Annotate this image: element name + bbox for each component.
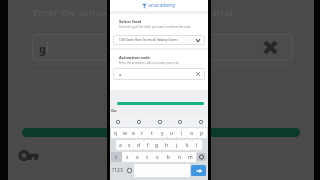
button[interactable]: ?123 (111, 164, 124, 177)
staticText: Activate your subscription using the cod… (33, 19, 160, 25)
button[interactable]: y (157, 128, 167, 138)
staticText: g (39, 41, 46, 56)
button[interactable]: c (142, 152, 152, 162)
button[interactable]: z (122, 152, 132, 162)
button[interactable]: b (163, 152, 174, 162)
button[interactable]: g (152, 140, 162, 150)
staticText: y (161, 130, 164, 137)
button[interactable]: f (143, 140, 152, 150)
button[interactable]: a (116, 140, 125, 150)
button[interactable]: Clear code (196, 72, 200, 76)
other: Activation key (18, 146, 39, 160)
staticText: ?123 (112, 167, 123, 174)
button[interactable] (117, 102, 204, 105)
staticText: f (147, 142, 149, 149)
staticText: a (119, 142, 122, 149)
staticText: x (136, 154, 139, 161)
staticText: 10th Exam (Non Technical) Railway Exams (119, 38, 178, 42)
button[interactable]: Backspace (197, 153, 206, 161)
button[interactable]: Keyboard tool 5 (197, 118, 204, 125)
staticText: Enter the activation code to activate yo… (119, 61, 179, 65)
button[interactable]: x (132, 152, 142, 162)
button[interactable]: j (172, 140, 182, 150)
staticText: Activation code (119, 55, 150, 60)
staticText: Enter the activation code to start your … (33, 6, 233, 19)
staticText: g (155, 142, 159, 149)
staticText: r (141, 130, 144, 137)
staticText: j (176, 142, 178, 149)
staticText: v (156, 154, 159, 161)
button[interactable]: a (113, 68, 205, 80)
staticText: w (123, 130, 127, 137)
staticText: h (165, 142, 169, 149)
staticText: c (146, 154, 149, 161)
button[interactable]: h (162, 140, 172, 150)
button[interactable]: q (111, 128, 120, 138)
staticText: i (181, 130, 183, 137)
button[interactable]: v (152, 152, 163, 162)
button[interactable]: d (134, 140, 143, 150)
button[interactable]: Emoji (124, 164, 134, 177)
button[interactable]: e (129, 128, 138, 138)
staticText: Select Goal (119, 19, 141, 24)
button[interactable]: k (182, 140, 192, 150)
staticText: m (188, 154, 193, 161)
button[interactable]: s (125, 140, 134, 150)
button[interactable]: unacademy (110, 0, 208, 11)
button[interactable]: ⇧ (111, 152, 122, 162)
staticText: s (128, 142, 131, 149)
button[interactable]: Keyboard tool 1 (114, 118, 121, 125)
staticText: Select the goal for which you want to re… (119, 25, 191, 29)
staticText: o (190, 130, 194, 137)
button[interactable]: Keyboard tool 4 (176, 118, 183, 125)
staticText: b (167, 154, 171, 161)
staticText: d (137, 142, 141, 149)
button[interactable]: Enter (191, 165, 206, 176)
button[interactable]: Keyboard tool 2 (135, 118, 142, 125)
staticText: n (178, 154, 182, 161)
button[interactable]: u (167, 128, 177, 138)
staticText: ⇧ (114, 154, 119, 160)
button[interactable]: o (187, 128, 197, 138)
staticText: t (151, 130, 153, 137)
button[interactable]: i (177, 128, 187, 138)
staticText: k (186, 142, 189, 149)
button[interactable]: l (192, 140, 202, 150)
staticText: e (132, 130, 135, 137)
button[interactable]: p (197, 128, 207, 138)
button[interactable]: 10th Exam (Non Technical) Railway Exams (113, 35, 205, 45)
staticText: Go (111, 108, 117, 113)
button[interactable]: m (185, 152, 196, 162)
staticText: unacademy (148, 2, 176, 9)
staticText: u (170, 130, 174, 137)
staticText: z (126, 154, 129, 161)
button[interactable]: t (147, 128, 157, 138)
button[interactable]: Clear (264, 41, 277, 54)
staticText: l (196, 142, 198, 149)
button[interactable]: n (174, 152, 185, 162)
button[interactable]: g (32, 34, 293, 61)
staticText: p (200, 130, 204, 137)
staticText: a (119, 72, 122, 77)
button[interactable]: r (138, 128, 147, 138)
button[interactable]: w (120, 128, 129, 138)
staticText: q (114, 130, 118, 137)
button[interactable]: Keyboard tool 3 (156, 118, 163, 125)
